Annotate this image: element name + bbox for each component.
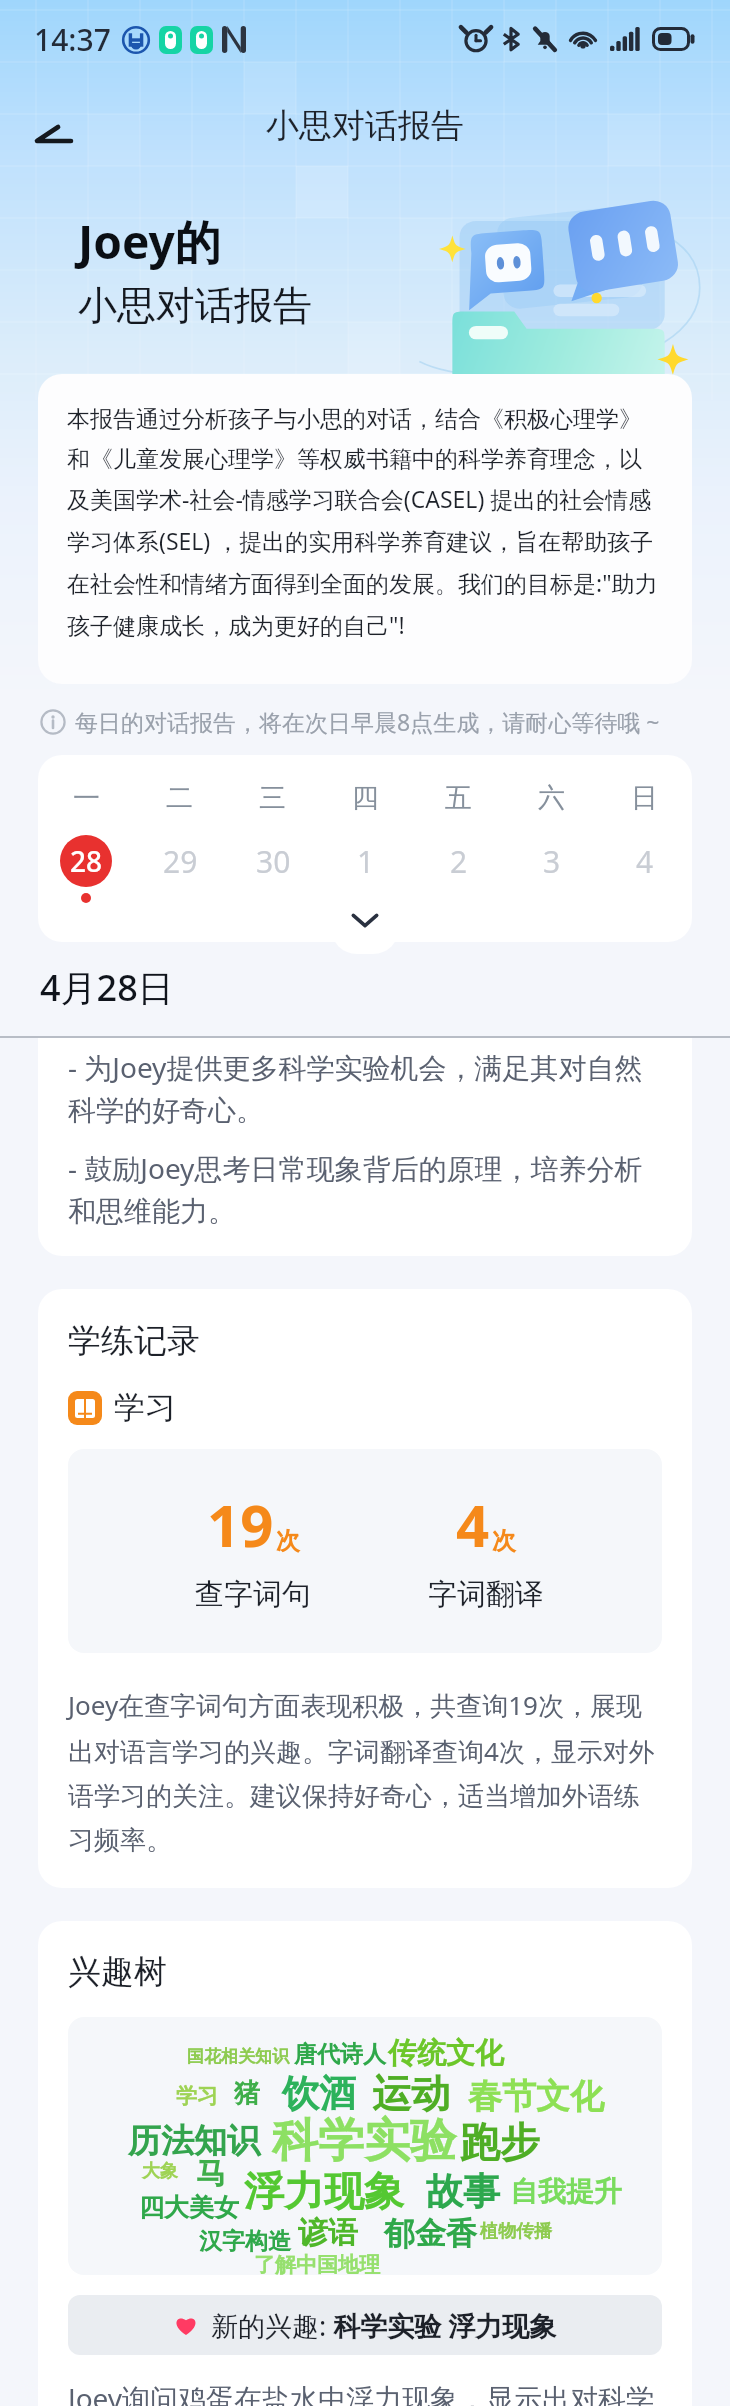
staticText: 28 [70,842,103,880]
staticText: 30 [256,841,291,882]
staticText: 郁金香 [384,2214,477,2253]
staticText: 三 [259,781,286,815]
staticText: 新的兴趣: 科学实验 浮力现象 [211,2307,557,2344]
staticText: 科学实验 [272,2112,456,2170]
staticText: 历法知识 [128,2120,260,2162]
staticText: 五 [445,781,472,815]
button[interactable]: 3 [526,835,578,887]
staticText: Joey询问鸡蛋在盐水中浮力现象，显示出对科学实验的浓厚兴趣，建议多安排动手实践… [68,2379,662,2406]
staticText: 跑步 [460,2117,540,2167]
staticText: 日 [631,781,658,815]
staticText: 19 [207,1485,274,1564]
button[interactable]: 4 [619,835,671,887]
staticText: 兴趣树 [68,1951,167,1993]
button[interactable]: 30 [247,835,299,887]
staticText: 饮酒 [282,2070,356,2117]
button[interactable]: 2 [433,835,485,887]
staticText: 大象 [142,2160,178,2183]
staticText: 四大美女 [139,2192,239,2223]
staticText: Joey的 [78,210,221,273]
staticText: 14:37 [34,19,111,60]
staticText: 四 [352,781,379,815]
staticText: 3 [543,841,561,882]
staticText: 浮力现象 [244,2166,404,2216]
staticText: 每日的对话报告，将在次日早晨8点生成，请耐心等待哦 ~ [75,706,660,737]
staticText: 学练记录 [68,1320,200,1362]
staticText: 4 [636,841,654,882]
button[interactable]: 新的兴趣: 科学实验 浮力现象 [68,2295,662,2355]
staticText: 故事 [426,2168,500,2215]
staticText: 马 [196,2155,226,2193]
staticText: 猪 [234,2077,260,2110]
staticText: - 鼓励Joey思考日常现象背后的原理，培养分析和思维能力。 [68,1149,662,1230]
button[interactable]: 28 [60,835,112,887]
staticText: 自我提升 [510,2174,622,2209]
staticText: 字词翻译 [428,1576,544,1613]
staticText: 二 [166,781,193,815]
staticText: - 为Joey提供更多科学实验机会，满足其对自然科学的好奇心。 [68,1048,662,1129]
staticText: 小思对话报告 [266,105,464,147]
staticText: 2 [450,841,468,882]
staticText: 汉字构造 [199,2227,291,2256]
button[interactable]: 29 [154,835,206,887]
staticText: 次 [492,1526,516,1556]
staticText: 传统文化 [388,2035,504,2072]
staticText: 学习 [176,2083,218,2109]
staticText: 国花相关知识 [187,2046,289,2067]
staticText: 学习 [114,1388,176,1427]
button[interactable]: Expand calendar [330,900,400,940]
staticText: 春节文化 [468,2075,604,2118]
staticText: 1 [357,841,375,882]
staticText: 查字词句 [195,1576,311,1613]
staticText: 运动 [372,2069,450,2118]
staticText: 唐代诗人 [294,2040,386,2069]
staticText: Joey在查字词句方面表现积极，共查询19次，展现出对语言学习的兴趣。字词翻译查… [68,1687,662,1857]
button[interactable]: Back [22,102,86,166]
staticText: 一 [73,781,100,815]
staticText: 小思对话报告 [78,281,312,330]
staticText: 29 [163,841,198,882]
staticText: 谚语 [298,2214,358,2252]
staticText: 本报告通过分析孩子与小思的对话，结合《积极心理学》和《儿童发展心理学》等权威书籍… [67,405,664,641]
staticText: 4月28日 [40,963,174,1012]
staticText: 次 [276,1526,300,1556]
button[interactable]: 1 [340,835,392,887]
staticText: 六 [538,781,565,815]
staticText: 了解中国地理 [254,2252,380,2275]
staticText: 植物传播 [480,2220,552,2243]
staticText: 4 [456,1485,490,1564]
